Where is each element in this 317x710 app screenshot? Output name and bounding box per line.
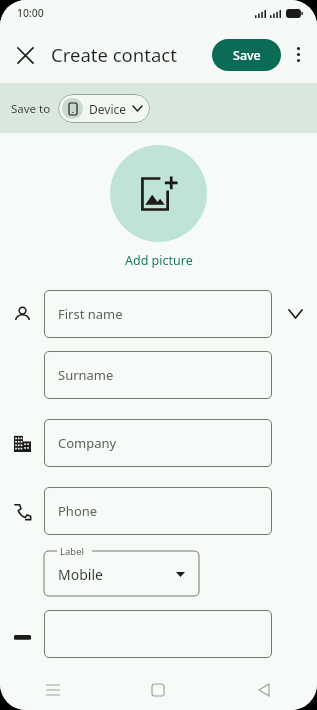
staticText: 10:00: [17, 6, 44, 20]
staticText: Save: [233, 47, 261, 64]
button[interactable]: Back: [211, 670, 317, 710]
staticText: Create contact: [51, 42, 177, 67]
staticText: Mobile: [58, 565, 103, 584]
button[interactable]: Expand name fields: [278, 297, 312, 331]
button[interactable]: Close: [5, 35, 45, 75]
button[interactable]: Surname: [44, 351, 272, 399]
staticText: Device: [89, 101, 127, 117]
button[interactable]: Home: [105, 670, 211, 710]
staticText: Phone: [58, 502, 98, 520]
button[interactable]: Device: [58, 94, 150, 123]
button[interactable]: Save: [212, 39, 281, 71]
button[interactable]: Label, Mobile: [44, 544, 199, 596]
staticText: Company: [58, 434, 117, 452]
staticText: Surname: [58, 366, 114, 384]
button[interactable]: Phone: [44, 487, 272, 535]
button[interactable]: [44, 610, 272, 658]
staticText: First name: [58, 305, 123, 323]
button[interactable]: Add picture: [110, 145, 207, 242]
staticText: Label: [60, 545, 84, 558]
button[interactable]: First name: [44, 290, 272, 338]
staticText: Save to: [11, 101, 51, 117]
button[interactable]: Company: [44, 419, 272, 467]
button[interactable]: Add picture: [125, 252, 193, 269]
button[interactable]: Recents: [0, 670, 105, 710]
button[interactable]: More options: [281, 37, 316, 72]
